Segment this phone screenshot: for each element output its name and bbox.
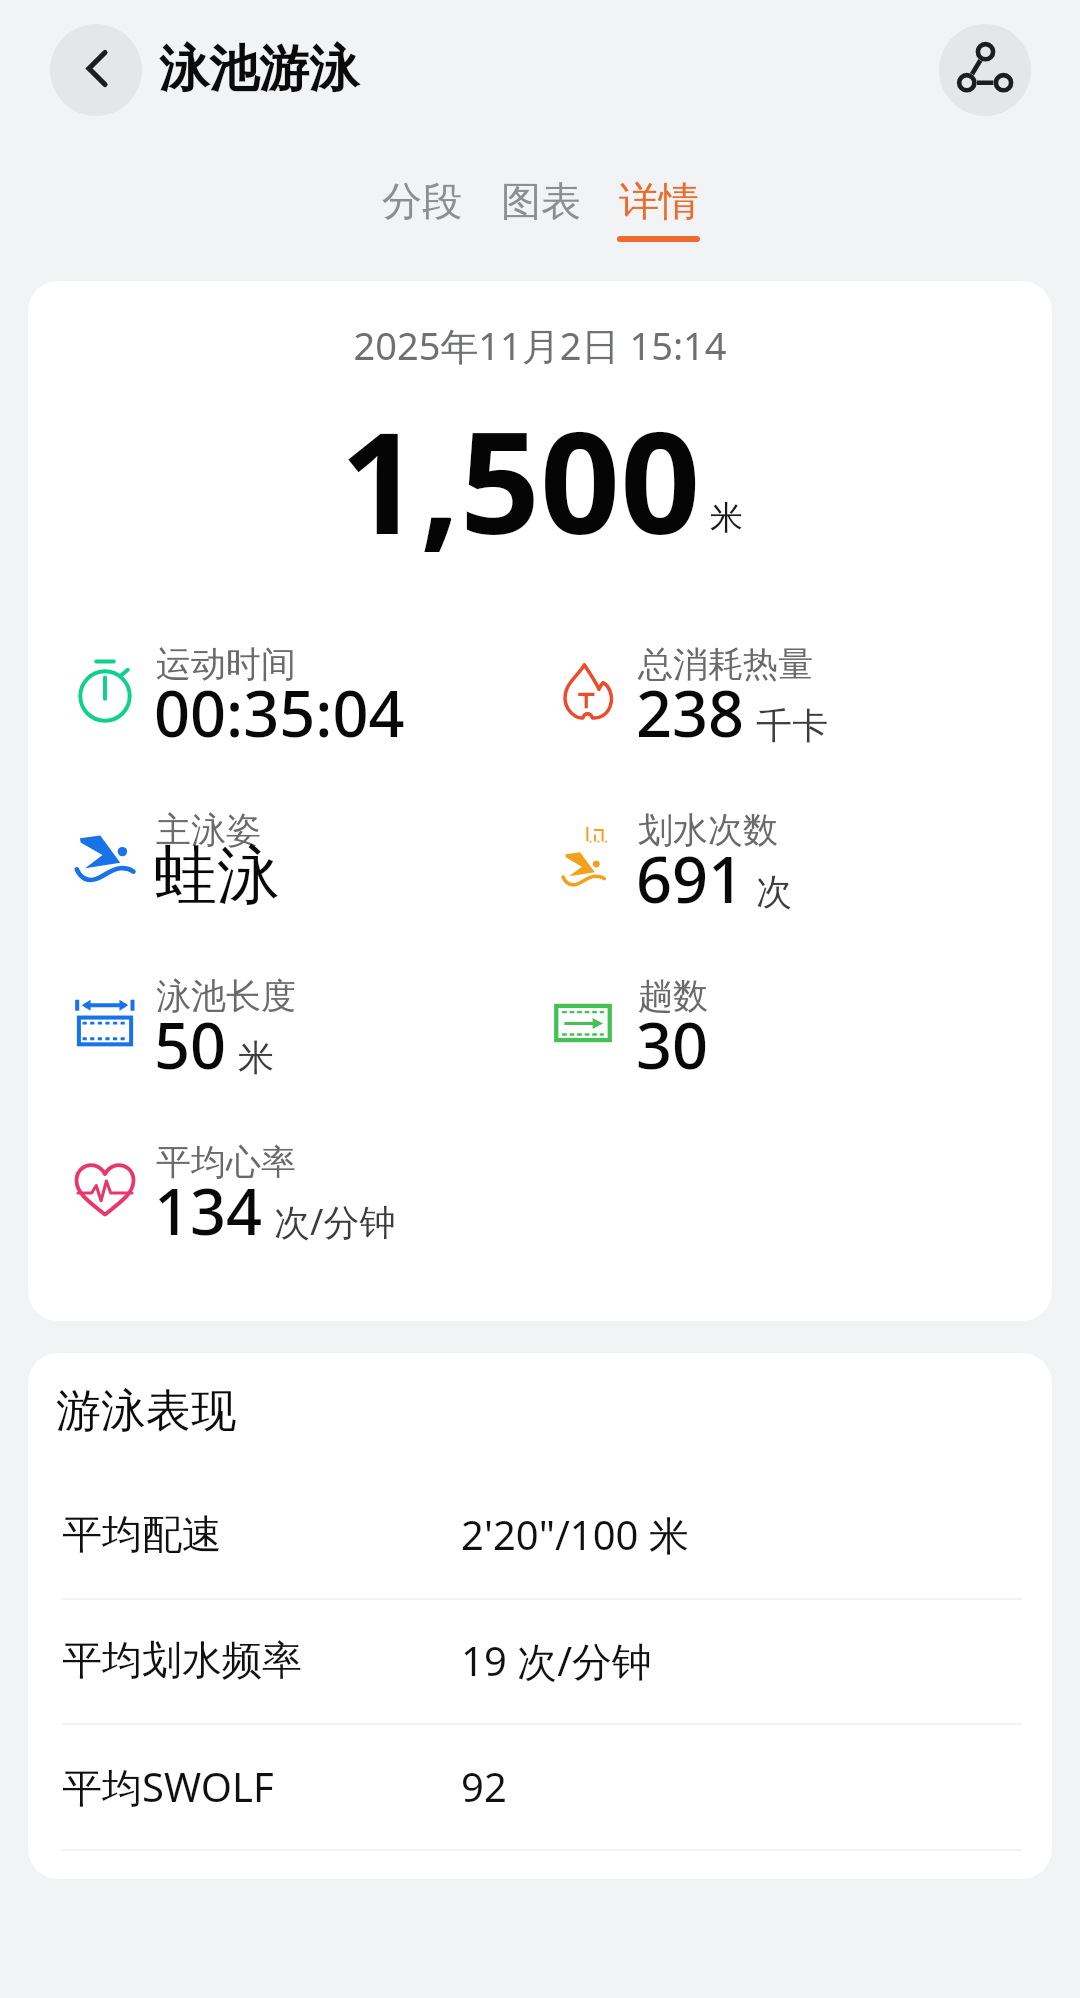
staticText: 米	[238, 1035, 274, 1080]
staticText: 划水次数	[638, 808, 778, 852]
staticText: 趟数	[638, 974, 708, 1018]
staticText: 2'20"/100 米	[461, 1507, 1052, 1562]
staticText: 92	[461, 1759, 1052, 1813]
staticText: 00:35:04	[154, 670, 405, 756]
button[interactable]: 图表	[490, 176, 591, 242]
staticText: 次/分钟	[274, 1197, 396, 1246]
staticText: 平均心率	[156, 1140, 296, 1184]
staticText: 泳池游泳	[159, 38, 359, 101]
staticText: 691	[636, 836, 745, 922]
staticText: 2025年11月2日 15:14	[28, 319, 1052, 371]
button[interactable]: Back	[50, 24, 142, 116]
button[interactable]: 平均配速	[28, 1472, 1052, 1596]
staticText: 1,500	[340, 384, 701, 575]
staticText: 30	[636, 1002, 709, 1088]
staticText: 平均配速	[62, 1509, 222, 1559]
staticText: 图表	[501, 176, 581, 226]
staticText: 次	[756, 869, 792, 914]
staticText: 游泳表现	[56, 1383, 236, 1440]
staticText: 运动时间	[156, 642, 296, 686]
staticText: 蛙泳	[154, 836, 280, 915]
staticText: 238	[636, 670, 745, 756]
button[interactable]: 详情	[608, 176, 709, 242]
staticText: 分段	[382, 176, 462, 226]
staticText: 泳池长度	[156, 974, 296, 1018]
staticText: 总消耗热量	[638, 642, 813, 686]
staticText: 主泳姿	[156, 808, 261, 852]
button[interactable]: Share	[939, 24, 1031, 116]
button[interactable]: 平均划水频率	[28, 1598, 1052, 1722]
staticText: 千卡	[756, 703, 828, 748]
staticText: 详情	[619, 176, 699, 226]
button[interactable]: 分段	[371, 176, 472, 242]
staticText: 平均SWOLF	[62, 1759, 274, 1814]
staticText: 134	[154, 1168, 263, 1254]
staticText: 平均划水频率	[62, 1635, 302, 1685]
button[interactable]: 平均SWOLF	[28, 1724, 1052, 1848]
staticText: 50	[154, 1002, 227, 1088]
staticText: 19 次/分钟	[461, 1633, 1052, 1688]
staticText: 米	[710, 497, 743, 539]
